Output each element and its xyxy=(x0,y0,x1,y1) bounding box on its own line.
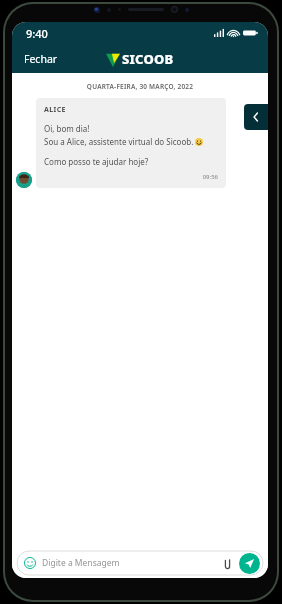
staticText: 09:56 xyxy=(44,173,218,181)
button[interactable]: Emoji xyxy=(17,551,263,575)
staticText: SICOOB xyxy=(122,50,174,68)
staticText: QUARTA-FEIRA, 30 MARÇO, 2022 xyxy=(12,82,268,91)
button[interactable]: ALICE xyxy=(36,98,226,188)
staticText: Oi, bom dia! xyxy=(44,123,90,134)
staticText: Fechar xyxy=(24,52,58,66)
button[interactable]: Fechar xyxy=(12,46,66,72)
staticText: Digite a Mensagem xyxy=(42,557,221,569)
staticText: ALICE xyxy=(44,105,66,115)
button[interactable]: Emoji xyxy=(24,557,36,569)
staticText: 9:40 xyxy=(26,26,48,41)
staticText: Como posso te ajudar hoje? xyxy=(44,156,149,167)
button[interactable]: Enviar xyxy=(239,553,260,574)
button[interactable]: Voltar xyxy=(244,104,268,130)
staticText: Sou a Alice, assistente virtual do Sicoo… xyxy=(44,136,194,147)
button[interactable]: Anexar arquivo xyxy=(221,557,234,570)
button[interactable]: Avatar da Alice xyxy=(16,172,32,188)
